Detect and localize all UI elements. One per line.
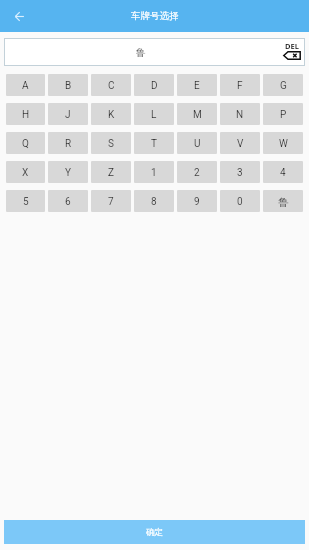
button[interactable]: 2: [177, 161, 217, 183]
staticText: S: [108, 138, 114, 150]
staticText: J: [65, 109, 71, 121]
staticText: DEL: [285, 41, 299, 51]
staticText: E: [194, 80, 200, 92]
staticText: 鲁: [278, 196, 289, 209]
button[interactable]: J: [48, 103, 88, 125]
staticText: L: [151, 109, 157, 121]
staticText: B: [65, 80, 72, 92]
button[interactable]: A: [6, 74, 45, 96]
staticText: 4: [280, 167, 286, 179]
button[interactable]: 4: [263, 161, 303, 183]
staticText: A: [22, 80, 29, 92]
staticText: 0: [237, 196, 243, 208]
staticText: T: [151, 138, 157, 150]
button[interactable]: G: [263, 74, 303, 96]
button[interactable]: X: [6, 161, 45, 183]
staticText: Y: [65, 167, 72, 179]
staticText: H: [22, 109, 30, 121]
staticText: 1: [151, 167, 157, 179]
button[interactable]: 3: [220, 161, 260, 183]
button[interactable]: 5: [6, 190, 45, 212]
button[interactable]: F: [220, 74, 260, 96]
button[interactable]: U: [177, 132, 217, 154]
button[interactable]: C: [91, 74, 131, 96]
button[interactable]: 0: [220, 190, 260, 212]
staticText: K: [108, 109, 115, 121]
button[interactable]: N: [220, 103, 260, 125]
staticText: N: [236, 109, 244, 121]
staticText: C: [108, 80, 115, 92]
button[interactable]: T: [134, 132, 174, 154]
button[interactable]: Y: [48, 161, 88, 183]
button[interactable]: S: [91, 132, 131, 154]
staticText: 确定: [146, 527, 163, 538]
staticText: U: [194, 138, 201, 150]
button[interactable]: Z: [91, 161, 131, 183]
button[interactable]: H: [6, 103, 45, 125]
staticText: W: [279, 138, 288, 150]
button[interactable]: 9: [177, 190, 217, 212]
button[interactable]: 7: [91, 190, 131, 212]
button[interactable]: Delete: [280, 39, 304, 61]
button[interactable]: 8: [134, 190, 174, 212]
button[interactable]: D: [134, 74, 174, 96]
staticText: 2: [194, 167, 200, 179]
button[interactable]: W: [263, 132, 303, 154]
button[interactable]: Back: [7, 4, 31, 28]
button[interactable]: 确定: [4, 520, 305, 544]
button[interactable]: V: [220, 132, 260, 154]
button[interactable]: 1: [134, 161, 174, 183]
staticText: 车牌号选择: [131, 10, 179, 22]
staticText: 7: [108, 196, 114, 208]
staticText: Q: [22, 138, 29, 150]
button[interactable]: P: [263, 103, 303, 125]
staticText: 9: [194, 196, 200, 208]
staticText: Z: [108, 167, 114, 179]
button[interactable]: 6: [48, 190, 88, 212]
staticText: P: [280, 109, 287, 121]
staticText: 6: [65, 196, 71, 208]
staticText: 5: [23, 196, 29, 208]
button[interactable]: 鲁: [263, 190, 303, 212]
button[interactable]: B: [48, 74, 88, 96]
staticText: D: [151, 80, 158, 92]
staticText: M: [193, 109, 202, 121]
button[interactable]: L: [134, 103, 174, 125]
button[interactable]: K: [91, 103, 131, 125]
staticText: F: [237, 80, 243, 92]
staticText: 鲁: [136, 46, 146, 59]
staticText: R: [65, 138, 72, 150]
staticText: 3: [237, 167, 243, 179]
staticText: G: [280, 80, 287, 92]
button[interactable]: M: [177, 103, 217, 125]
button[interactable]: R: [48, 132, 88, 154]
staticText: X: [22, 167, 29, 179]
button[interactable]: E: [177, 74, 217, 96]
staticText: 8: [151, 196, 157, 208]
staticText: V: [237, 138, 244, 150]
button[interactable]: Q: [6, 132, 45, 154]
